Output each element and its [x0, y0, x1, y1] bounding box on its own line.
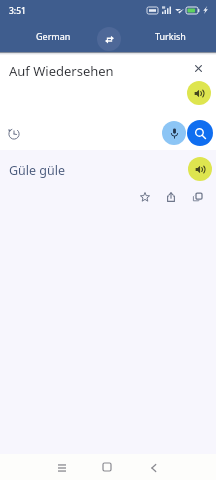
button[interactable]: Back	[144, 458, 163, 477]
staticText: Turkish	[155, 30, 186, 42]
button[interactable]: Voice input	[162, 121, 186, 145]
button[interactable]: German	[16, 23, 90, 49]
button[interactable]: Menu	[52, 458, 71, 477]
button[interactable]: Swap languages	[97, 27, 121, 51]
button[interactable]: Listen to translation	[188, 157, 212, 181]
button[interactable]: History	[4, 124, 24, 144]
button[interactable]: Share	[162, 188, 180, 206]
staticText: German	[36, 30, 71, 42]
staticText: 3:51	[9, 5, 26, 17]
button[interactable]: Clear text	[188, 58, 208, 78]
button[interactable]: Copy	[189, 188, 207, 206]
button[interactable]: Search	[187, 120, 213, 146]
button[interactable]: Save to phrasebook	[136, 188, 154, 206]
button[interactable]: Home	[97, 457, 116, 476]
button[interactable]: Listen to source	[187, 81, 211, 105]
button[interactable]: Turkish	[133, 23, 207, 49]
staticText: Auf Wiedersehen	[9, 62, 114, 80]
staticText: Güle güle	[9, 162, 66, 179]
